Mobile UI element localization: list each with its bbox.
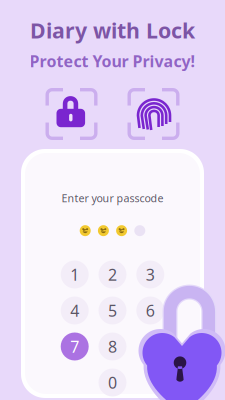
button[interactable]: Passcode lock [45, 88, 97, 140]
button[interactable]: 4 [61, 296, 89, 324]
button[interactable]: 0 [98, 368, 126, 396]
button[interactable]: 3 [136, 260, 164, 288]
staticText: 4 [70, 300, 79, 321]
button[interactable]: 7 [61, 332, 89, 360]
staticText: Protect Your Privacy! [29, 50, 195, 71]
staticText: Enter your passcode [61, 191, 163, 205]
staticText: 3 [146, 264, 155, 285]
staticText: 1 [70, 264, 79, 285]
button[interactable]: 8 [98, 332, 126, 360]
button[interactable]: 6 [136, 296, 164, 324]
staticText: Diary with Lock [30, 16, 195, 44]
button[interactable]: 2 [98, 260, 126, 288]
staticText: 0 [108, 372, 117, 393]
staticText: 2 [108, 264, 117, 285]
button[interactable]: 1 [61, 260, 89, 288]
button[interactable]: 5 [98, 296, 126, 324]
staticText: 7 [70, 336, 79, 357]
staticText: 5 [108, 300, 117, 321]
button[interactable]: Fingerprint unlock [127, 88, 179, 140]
staticText: 6 [146, 300, 155, 321]
staticText: 8 [108, 336, 117, 357]
